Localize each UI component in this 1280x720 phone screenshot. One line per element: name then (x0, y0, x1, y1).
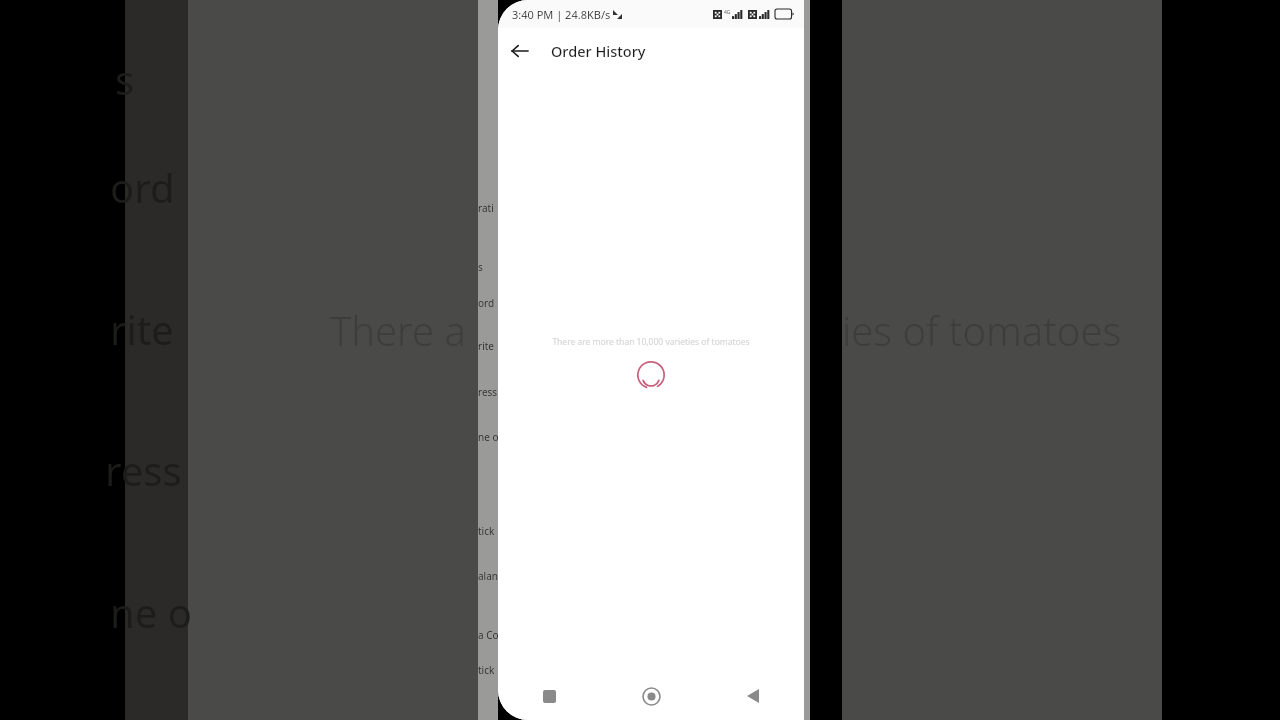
staticText: ne o (478, 430, 499, 444)
staticText: ne o (110, 585, 192, 639)
staticText: rati (478, 201, 494, 215)
staticText: alan (478, 569, 498, 583)
staticText: s (115, 52, 135, 106)
button[interactable]: Back (702, 672, 804, 720)
staticText: There are more than 10,000 varieties of … (552, 336, 750, 348)
staticText: ress (478, 385, 498, 399)
staticText: 3:40 PM | 24.8KB/s (512, 7, 611, 22)
staticText: tick (478, 663, 495, 677)
staticText: There a (330, 303, 466, 357)
staticText: ies of tomatoes (842, 303, 1122, 357)
staticText: a Co (478, 628, 499, 642)
button[interactable]: Back (502, 33, 538, 69)
staticText: Order History (551, 41, 646, 61)
staticText: 4G (724, 9, 731, 16)
staticText: s (478, 260, 483, 274)
staticText: ord (478, 296, 495, 310)
staticText: rite (110, 302, 174, 356)
staticText: ord (110, 160, 175, 214)
button[interactable]: Home (600, 672, 702, 720)
button[interactable]: Recent apps (498, 672, 600, 720)
staticText: ress (105, 443, 182, 497)
staticText: tick (478, 524, 495, 538)
staticText: rite (478, 339, 494, 353)
